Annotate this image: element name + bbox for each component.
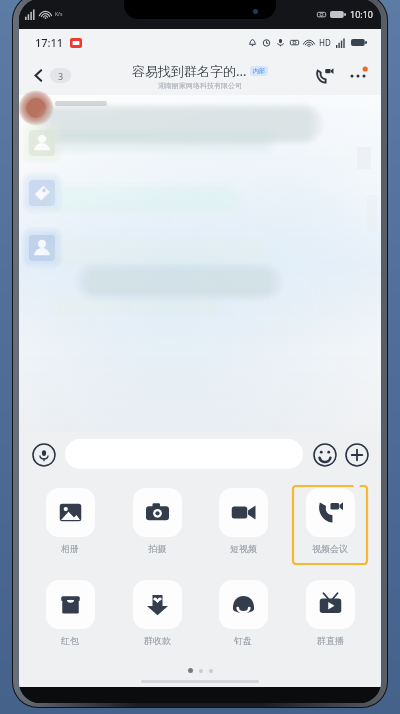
staticText: 相册 [61,543,79,554]
staticText: HD [319,37,331,48]
staticText: K/s [55,11,63,18]
button[interactable]: 相册 [31,484,109,558]
button[interactable]: 钉盘 [204,576,282,650]
button[interactable]: Emoji [312,442,337,467]
button[interactable]: 群收款 [118,576,196,650]
staticText: 3 [58,70,64,82]
button[interactable]: 视频会议 [291,484,369,558]
staticText: 群收款 [144,635,171,646]
staticText: 短视频 [230,543,257,554]
staticText: 红包 [61,635,79,646]
button[interactable]: 短视频 [204,484,282,558]
staticText: 10:10 [350,8,374,20]
button[interactable]: More actions [344,442,369,467]
staticText: 视频会议 [312,543,348,554]
button[interactable]: 群直播 [291,576,369,650]
button[interactable]: Video call [311,62,337,88]
staticText: 17:11 [35,35,64,50]
staticText: 容易找到群名字的… [132,62,247,80]
button[interactable]: Back [27,65,75,86]
button[interactable]: 红包 [31,576,109,650]
staticText: 钉盘 [234,635,252,646]
button[interactable]: More options [345,62,371,88]
staticText: 群直播 [317,635,344,646]
button[interactable]: 拍摄 [118,484,196,558]
button[interactable]: Voice input [31,442,56,467]
staticText: 湖南丽家网络科技有限公司 [158,81,242,90]
staticText: 内部 [253,67,265,75]
staticText: 拍摄 [148,543,166,554]
